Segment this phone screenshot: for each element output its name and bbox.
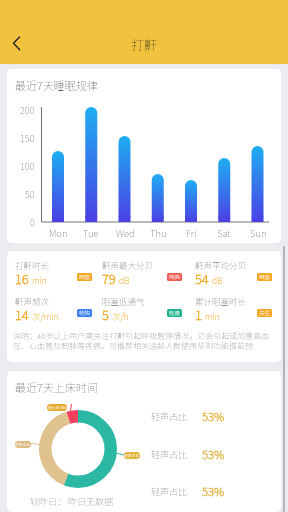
staticText: 最近7天上床时间: [15, 379, 98, 395]
staticText: 0: [30, 216, 35, 229]
staticText: 阻塞低通气: [102, 295, 145, 307]
button[interactable]: 明显: [257, 273, 272, 281]
staticText: 最近7天睡眠规律: [15, 77, 98, 93]
staticText: 较昨日： 昨日无数据: [30, 495, 113, 508]
staticText: 次/min: [32, 310, 59, 322]
staticText: 极大声占比: [48, 405, 67, 411]
staticText: 累计阻塞时长: [195, 295, 247, 307]
staticText: Thu: [150, 226, 167, 240]
staticText: 53%: [202, 446, 225, 463]
staticText: 鼾声频次: [15, 295, 50, 307]
staticText: 中声占比: [15, 442, 31, 448]
staticText: 16: [15, 269, 29, 288]
button[interactable]: 轻度: [167, 309, 182, 317]
button[interactable]: 轻声占比: [151, 446, 225, 463]
staticText: 轻度: [169, 309, 181, 317]
staticText: 打鼾时长: [15, 259, 50, 271]
staticText: Wed: [116, 226, 135, 240]
staticText: 50: [25, 188, 35, 201]
staticText: min: [205, 310, 220, 322]
button[interactable]: [6, 34, 32, 60]
staticText: 较快: [79, 309, 91, 317]
staticText: 100: [20, 160, 35, 173]
staticText: 5: [102, 305, 109, 324]
staticText: 79: [102, 269, 116, 288]
staticText: 轻声占比: [151, 448, 188, 461]
staticText: dB: [212, 274, 223, 286]
staticText: min: [32, 274, 47, 286]
staticText: Fri: [186, 226, 197, 240]
staticText: 鼾声平均分贝: [195, 259, 247, 271]
staticText: 次/h: [112, 310, 129, 322]
staticText: dB: [119, 274, 130, 286]
button[interactable]: 轻声占比: [151, 483, 225, 500]
staticText: 明显: [259, 273, 271, 281]
staticText: 明显: [79, 273, 91, 281]
staticText: 轻声占比: [124, 453, 140, 459]
button[interactable]: 响亮: [167, 273, 182, 281]
staticText: 53%: [202, 408, 225, 425]
staticText: Tue: [83, 226, 99, 240]
staticText: Mon: [49, 226, 68, 240]
staticText: 53%: [202, 483, 225, 500]
staticText: 14: [15, 305, 29, 324]
staticText: 54: [195, 269, 209, 288]
staticText: 150: [20, 132, 35, 145]
staticText: 1: [195, 305, 202, 324]
staticText: 200: [20, 104, 35, 117]
staticText: 关注: [259, 309, 271, 317]
staticText: 响亮: [169, 273, 181, 281]
staticText: 打鼾: [131, 35, 158, 54]
staticText: Sun: [250, 226, 267, 240]
staticText: Sat: [217, 226, 231, 240]
staticText: 轻声占比: [151, 410, 188, 423]
staticText: 说明：40岁以上用户需关注打鼾引起呼吸暂停情况，它会引起或加重高血 压、心血管及…: [13, 330, 279, 351]
button[interactable]: 关注: [257, 309, 272, 317]
staticText: 鼾声最大分贝: [102, 259, 154, 271]
button[interactable]: 轻声占比: [151, 408, 225, 425]
button[interactable]: 明显: [77, 273, 92, 281]
staticText: 轻声占比: [151, 485, 188, 498]
button[interactable]: 较快: [77, 309, 92, 317]
